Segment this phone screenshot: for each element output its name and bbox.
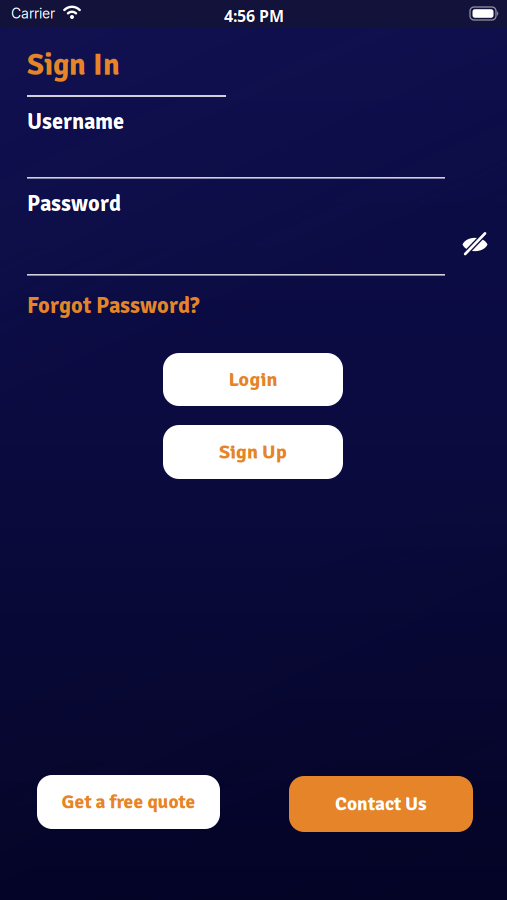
staticText: Sign Up	[219, 440, 287, 464]
button[interactable]: Forgot Password?	[27, 292, 199, 320]
button[interactable]: Sign Up	[163, 425, 343, 479]
staticText: 4:56 PM	[224, 5, 284, 27]
staticText: Get a free quote	[61, 790, 195, 814]
staticText: Password	[27, 190, 121, 218]
staticText: Sign In	[27, 46, 120, 84]
staticText: Username	[27, 108, 124, 136]
staticText: Login	[228, 367, 277, 392]
staticText: Contact Us	[335, 792, 427, 816]
staticText: Forgot Password?	[27, 292, 199, 320]
button[interactable]: Show password	[462, 232, 488, 256]
button[interactable]: Contact Us	[289, 776, 473, 832]
staticText: Carrier	[11, 5, 55, 22]
button[interactable]: Login	[163, 353, 343, 406]
button[interactable]: Get a free quote	[37, 775, 220, 829]
